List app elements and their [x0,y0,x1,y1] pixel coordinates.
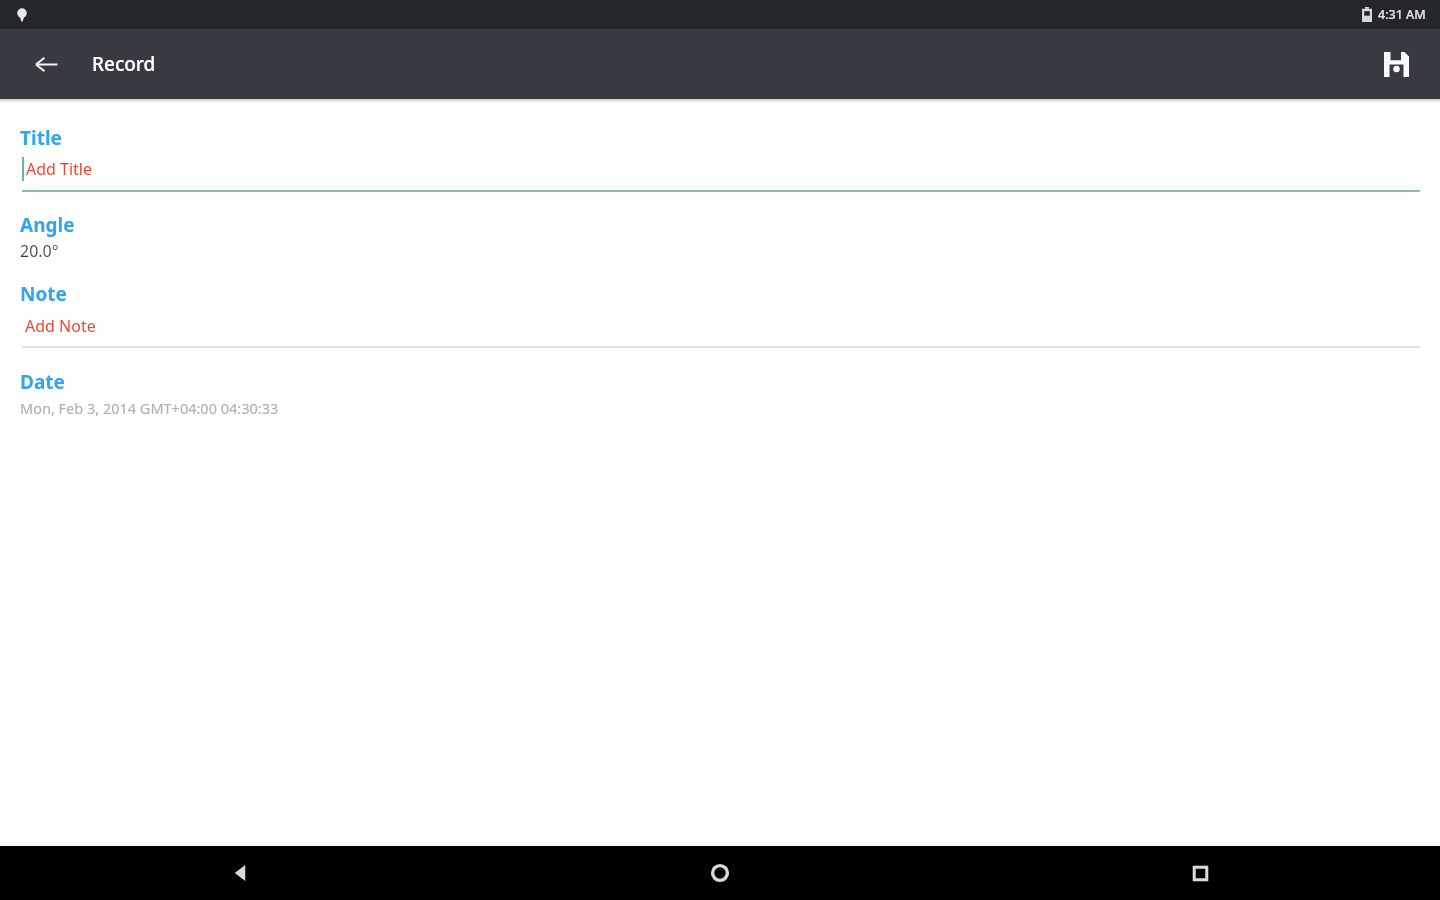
staticText: Angle [20,212,75,238]
staticText: Add Note [25,315,96,337]
staticText: Add Title [26,158,93,180]
button[interactable]: Mon, Feb 3, 2014 GMT+04:00 04:30:33 [20,398,279,418]
button[interactable]: Add Note [22,315,1420,348]
staticText: Record [92,51,156,77]
button[interactable]: Back [20,38,72,90]
staticText: 20.0° [20,240,59,262]
staticText: Title [20,125,62,151]
staticText: Note [20,281,67,307]
button[interactable]: Home [480,846,960,900]
staticText: Date [20,369,65,395]
button[interactable]: Back [0,846,480,900]
button[interactable]: Add Title [22,157,1420,192]
staticText: 4:31 AM [1378,6,1426,23]
button[interactable]: Recent apps [960,846,1440,900]
button[interactable]: Save [1370,38,1422,90]
